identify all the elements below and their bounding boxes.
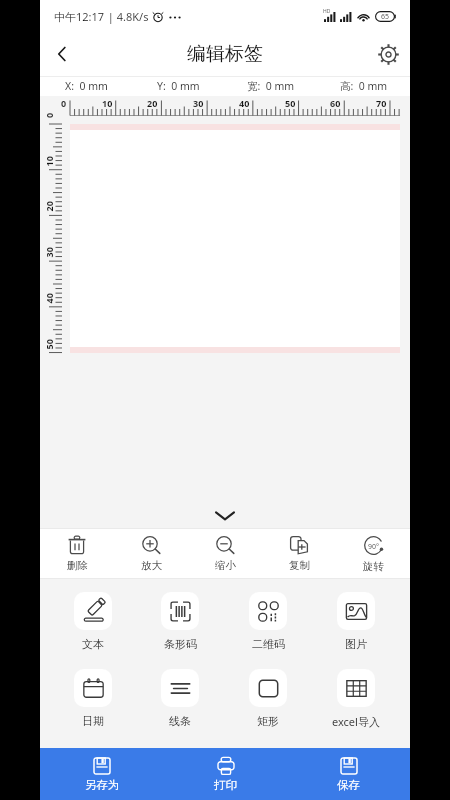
staticText: 高: 0 mm [340,79,388,93]
staticText: 旋转 [363,560,384,573]
staticText: 编辑标签 [187,42,263,66]
staticText: 50 [42,338,54,349]
staticText: 保存 [337,778,360,792]
staticText: 中午12:17 [54,9,105,24]
staticText: 30 [193,97,204,109]
button[interactable]: 图片 [312,592,400,651]
button[interactable]: 90° [336,528,410,579]
staticText: Y: 0 mm [157,79,200,93]
staticText: 10 [42,155,54,166]
button[interactable]: 缩小 [188,528,262,579]
staticText: 放大 [141,559,162,572]
staticText: 缩小 [215,559,236,572]
staticText: 打印 [214,778,237,792]
button[interactable]: 复制 [262,528,336,579]
staticText: 复制 [289,559,310,572]
staticText: | 4.8K/s [105,9,149,24]
staticText: 0 [43,112,55,118]
button[interactable]: 日期 [49,669,136,728]
staticText: 0 [61,97,67,109]
button[interactable]: Collapse panel [40,502,410,528]
staticText: 20 [147,97,158,109]
button[interactable]: 另存为 [40,748,164,800]
staticText: 线条 [169,714,191,728]
staticText: HD [323,8,331,15]
button[interactable]: 删除 [40,528,114,579]
staticText: 40 [239,97,250,109]
staticText: 另存为 [85,778,120,792]
staticText: 65 [381,12,390,22]
button[interactable]: excel导入 [312,669,400,729]
staticText: 矩形 [257,714,279,728]
staticText: 图片 [345,637,367,651]
staticText: X: 0 mm [65,79,108,93]
staticText: 70 [376,97,387,109]
staticText: 50 [285,97,296,109]
staticText: 40 [42,292,54,303]
staticText: 删除 [67,559,88,572]
button[interactable]: 文本 [49,592,136,651]
button[interactable]: Back [40,32,84,76]
staticText: 60 [330,97,341,109]
staticText: 日期 [82,714,104,728]
staticText: 20 [42,200,54,211]
button[interactable]: 放大 [114,528,188,579]
button[interactable]: 条形码 [136,592,224,651]
staticText: 30 [42,246,54,257]
staticText: 条形码 [164,637,197,651]
staticText: 二维码 [252,637,285,651]
staticText: 文本 [82,637,104,651]
button[interactable]: Settings [366,32,410,76]
staticText: 10 [102,97,113,109]
button[interactable]: 二维码 [224,592,312,651]
button[interactable]: 打印 [164,748,287,800]
button[interactable]: 保存 [287,748,410,800]
button[interactable]: 线条 [136,669,224,728]
staticText: excel导入 [332,714,380,729]
staticText: 宽: 0 mm [247,79,295,93]
button[interactable]: 矩形 [224,669,312,728]
staticText: 90° [368,542,380,552]
